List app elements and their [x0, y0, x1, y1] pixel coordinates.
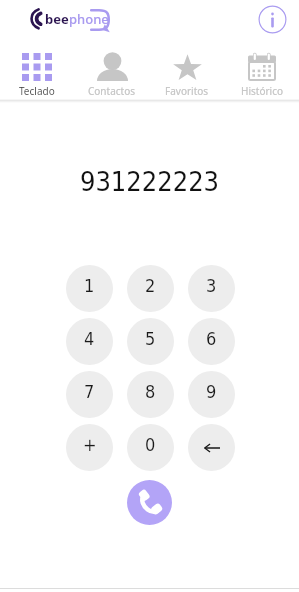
staticText: 5 [145, 328, 156, 349]
button[interactable]: Contactos [74, 51, 149, 98]
staticText: Favoritos [165, 84, 209, 98]
staticText: 4 [84, 328, 95, 349]
button[interactable]: 9 [188, 371, 235, 418]
button[interactable]: Information [258, 5, 287, 34]
staticText: 3 [206, 275, 217, 296]
button[interactable]: Teclado [0, 51, 74, 98]
staticText: Histórico [241, 84, 283, 98]
staticText: 2 [145, 275, 156, 296]
button[interactable]: Favoritos [149, 51, 224, 98]
staticText: 8 [145, 381, 156, 402]
button[interactable]: 8 [127, 371, 174, 418]
button[interactable]: 1 [66, 265, 113, 312]
staticText: 6 [206, 328, 217, 349]
staticText: 0 [145, 434, 156, 455]
staticText: 7 [84, 381, 95, 402]
button[interactable]: 5 [127, 318, 174, 365]
staticText: 9 [206, 381, 217, 402]
button[interactable]: 2 [127, 265, 174, 312]
staticText: + [83, 434, 97, 455]
button[interactable]: 6 [188, 318, 235, 365]
button[interactable]: 4 [66, 318, 113, 365]
staticText: Contactos [88, 84, 136, 98]
button[interactable] [188, 424, 235, 471]
staticText: bee [45, 10, 69, 28]
button[interactable]: 3 [188, 265, 235, 312]
button[interactable]: Histórico [224, 51, 299, 98]
staticText: 1 [84, 275, 95, 296]
button[interactable]: 7 [66, 371, 113, 418]
staticText: 931222223 [0, 166, 299, 197]
staticText: phone [69, 10, 109, 28]
button[interactable]: Call [127, 480, 172, 525]
staticText: Teclado [19, 84, 55, 98]
button[interactable]: 0 [127, 424, 174, 471]
button[interactable]: + [66, 424, 113, 471]
